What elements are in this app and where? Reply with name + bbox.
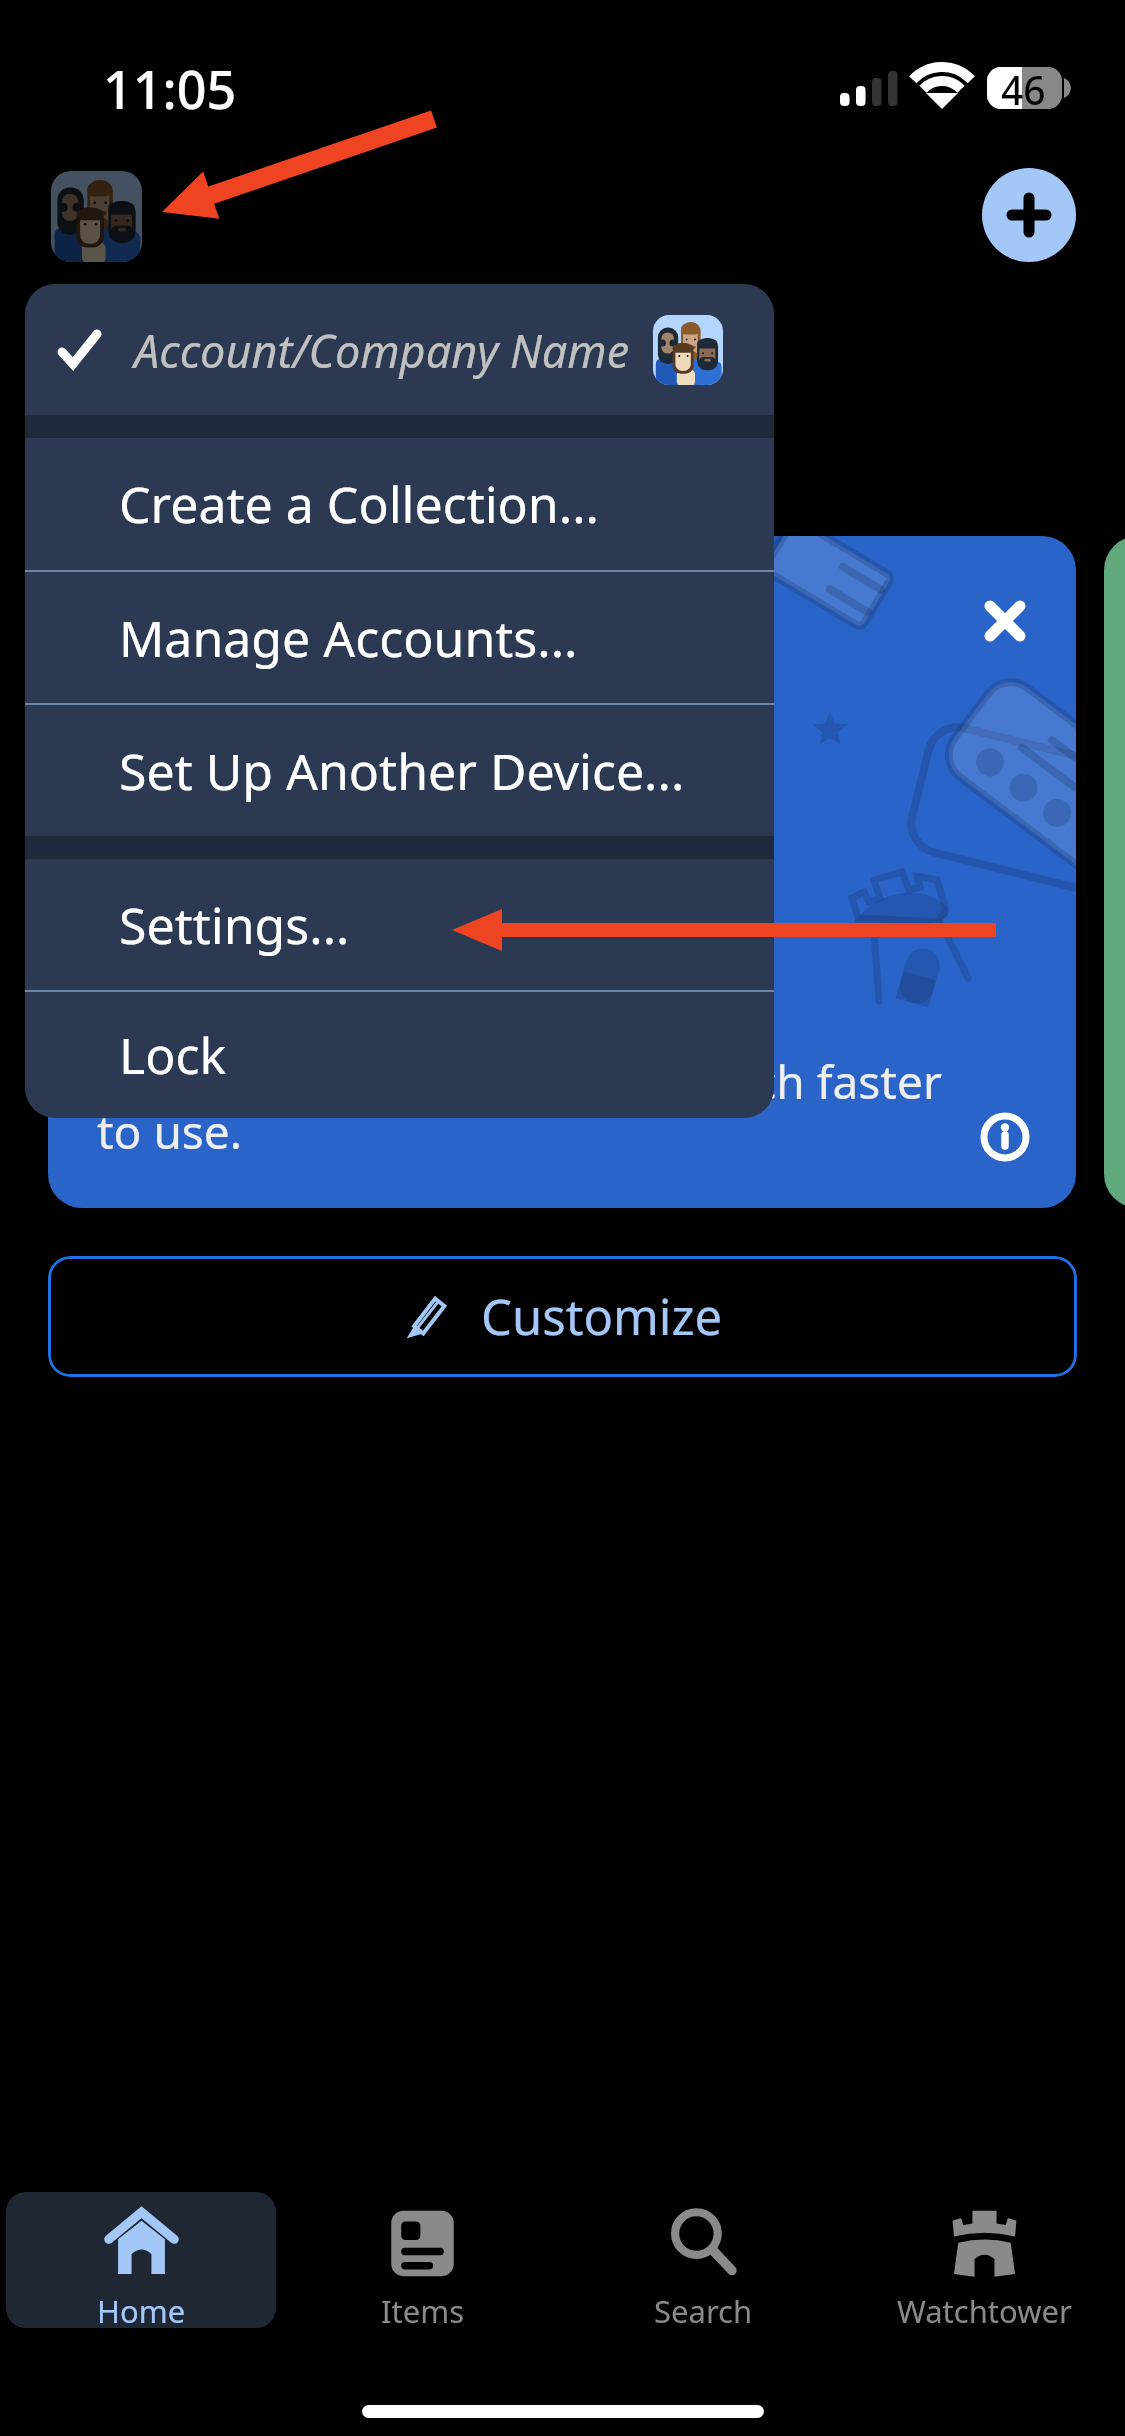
staticText: Lock <box>119 1021 227 1089</box>
staticText: Items <box>381 2290 465 2332</box>
staticText: 46 <box>1001 63 1046 109</box>
button[interactable]: Add <box>982 168 1076 262</box>
button[interactable]: We have made it safer and much faster <box>48 536 1076 1208</box>
staticText: Customize <box>481 1283 723 1350</box>
staticText: Create a Collection... <box>119 470 599 538</box>
staticText: We have made it safer and much faster <box>97 1050 942 1113</box>
button[interactable]: Create a Collection... <box>25 438 774 570</box>
staticText: Home <box>97 2290 186 2332</box>
button[interactable]: Home <box>6 2192 276 2328</box>
button[interactable]: Lock <box>25 992 774 1118</box>
button[interactable]: Info <box>965 1097 1045 1177</box>
button[interactable]: Customize <box>48 1256 1077 1377</box>
button[interactable]: Account/Company Name <box>25 284 774 415</box>
button[interactable]: Settings... <box>25 859 774 990</box>
button[interactable]: Manage Accounts... <box>25 572 774 703</box>
staticText: Set Up Another Device... <box>119 737 685 805</box>
staticText: 11:05 <box>103 53 237 124</box>
button[interactable]: Watchtower <box>850 2192 1119 2328</box>
button[interactable]: Account <box>51 171 142 262</box>
button[interactable] <box>1104 536 1125 1208</box>
staticText: to use. <box>97 1100 243 1163</box>
button[interactable]: Close <box>955 571 1055 671</box>
staticText: Settings... <box>119 891 350 959</box>
staticText: Manage Accounts... <box>119 604 578 672</box>
button[interactable]: Items <box>288 2192 557 2328</box>
staticText: Watchtower <box>897 2290 1072 2332</box>
button[interactable]: Search <box>569 2192 838 2328</box>
button[interactable]: Set Up Another Device... <box>25 705 774 836</box>
staticText: Account/Company Name <box>134 320 630 381</box>
staticText: Search <box>654 2290 753 2332</box>
